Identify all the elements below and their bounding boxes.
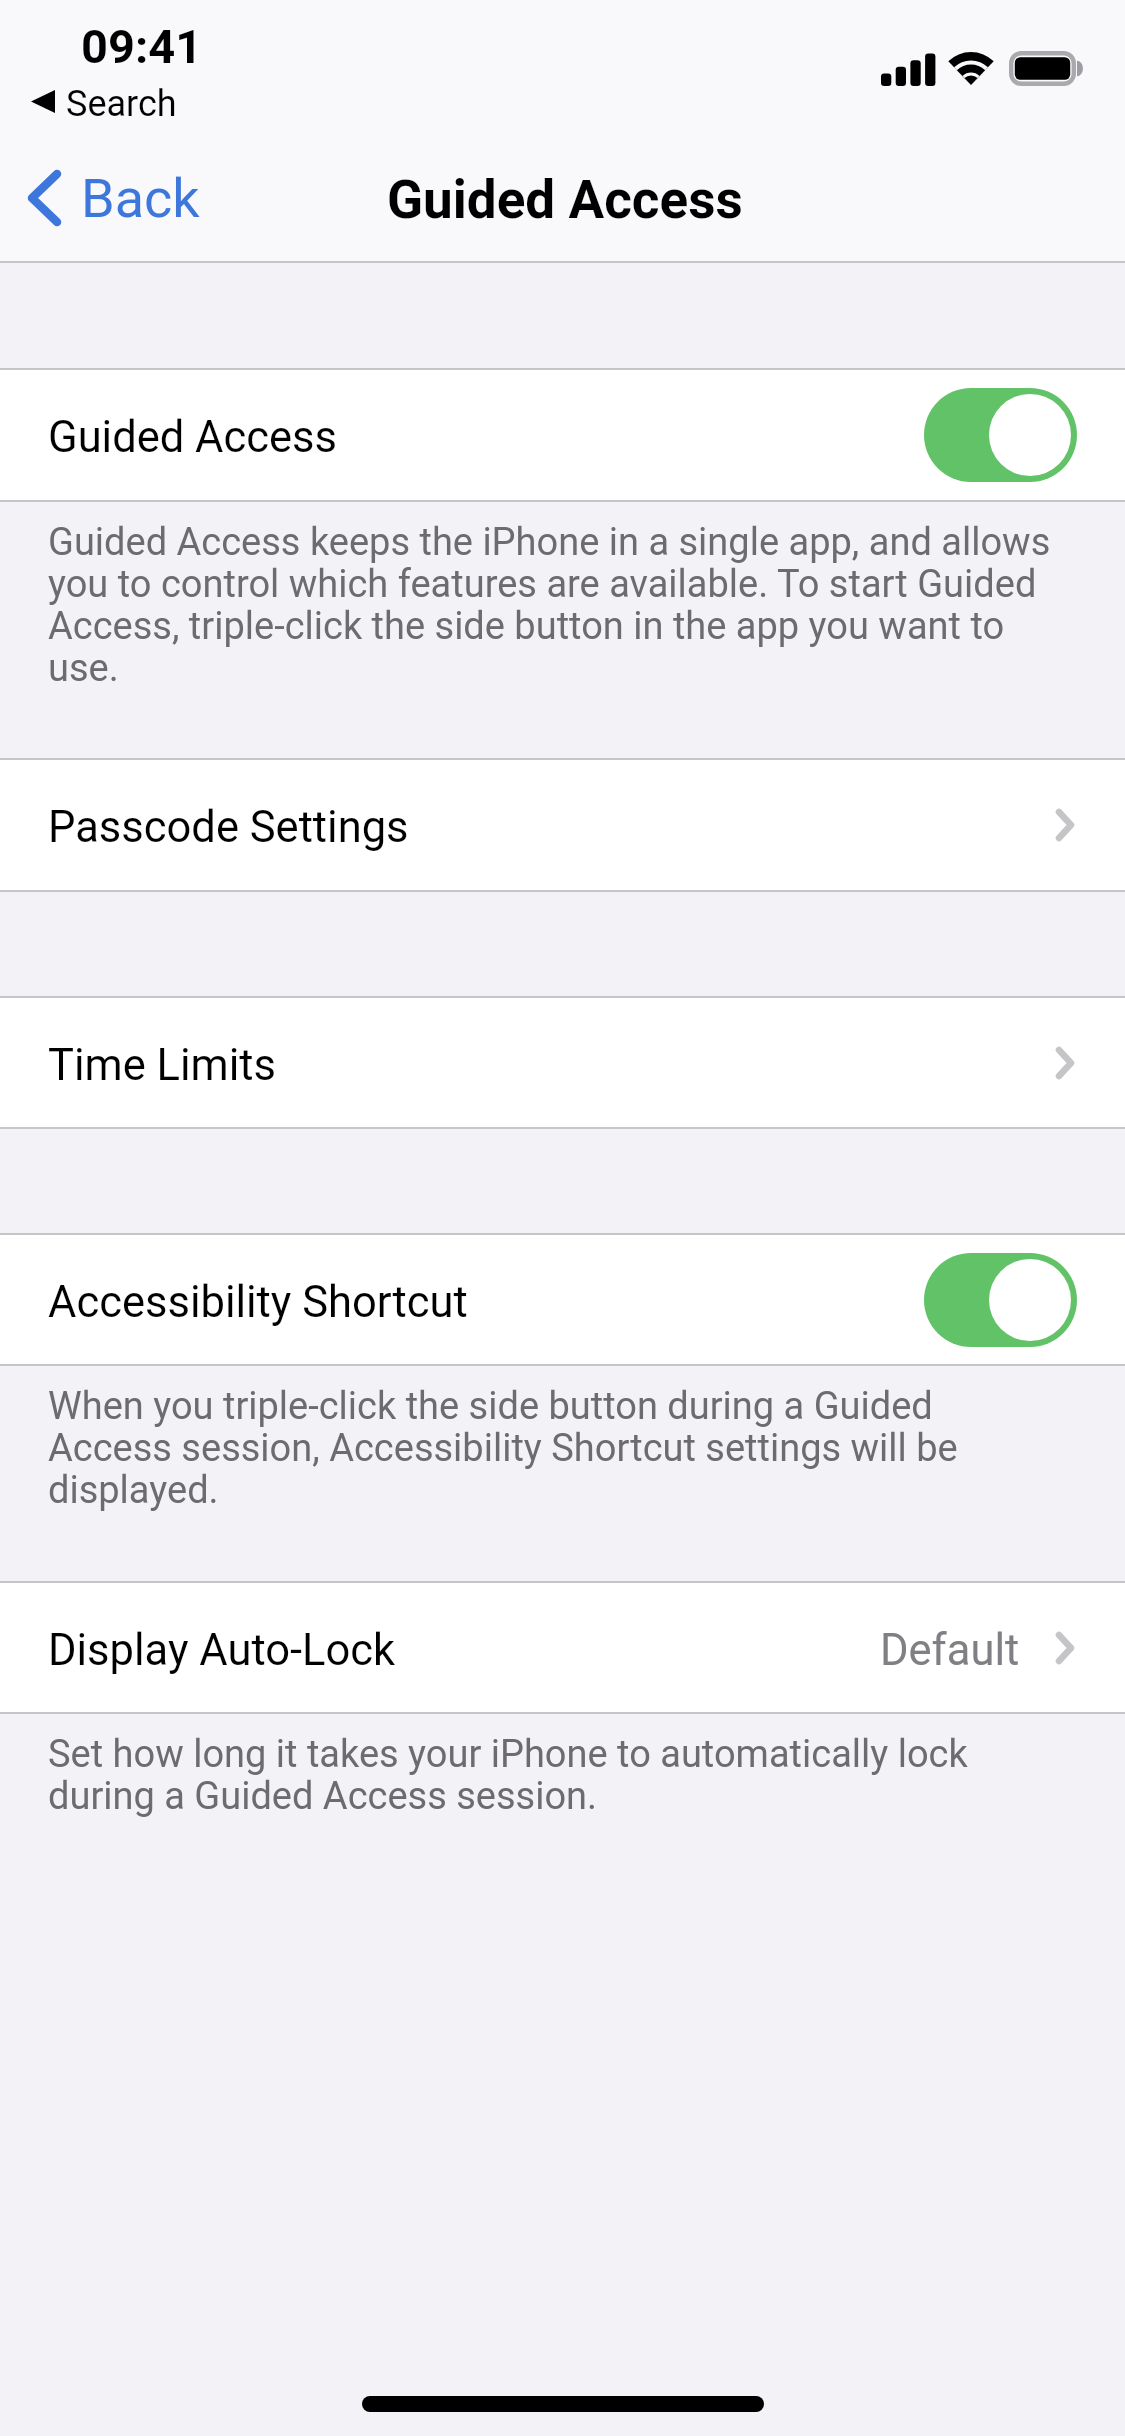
button[interactable]: Guided Access [0, 370, 1125, 500]
staticText: Accessibility Shortcut [48, 1277, 468, 1327]
staticText: Guided Access keeps the iPhone in a sing… [48, 522, 1058, 690]
button[interactable]: Passcode Settings [0, 760, 1125, 890]
staticText: 09:41 [81, 19, 203, 74]
staticText: Time Limits [48, 1040, 276, 1090]
staticText: Guided Access [387, 169, 743, 231]
staticText: Passcode Settings [48, 802, 409, 852]
staticText: Guided Access [48, 412, 337, 462]
button[interactable]: Toggle [924, 388, 1077, 482]
staticText: Search [66, 83, 177, 125]
staticText: Display Auto-Lock [48, 1625, 396, 1675]
button[interactable]: Accessibility Shortcut [0, 1235, 1125, 1364]
button[interactable]: Time Limits [0, 998, 1125, 1127]
staticText: Back [81, 167, 200, 230]
button[interactable]: Toggle [924, 1253, 1077, 1347]
staticText: Set how long it takes your iPhone to aut… [48, 1734, 1058, 1818]
staticText: Default [880, 1625, 1020, 1675]
button[interactable]: Back [0, 155, 228, 246]
staticText: When you triple-click the side button du… [48, 1386, 1058, 1512]
button[interactable]: Display Auto-Lock [0, 1583, 1125, 1712]
